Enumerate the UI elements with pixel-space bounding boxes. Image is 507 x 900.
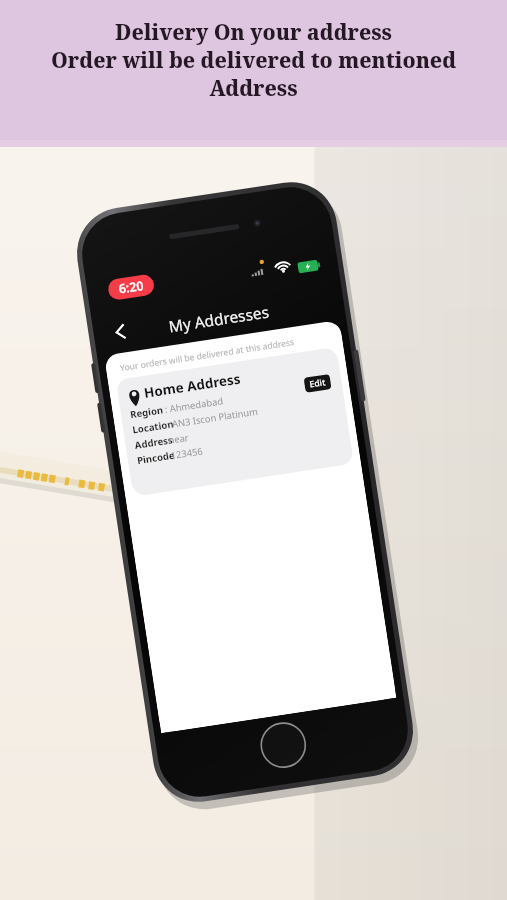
other: Delivery address promo screenshot — [0, 0, 507, 900]
button[interactable]: Phone mockup showing My Addresses screen — [0, 0, 507, 900]
